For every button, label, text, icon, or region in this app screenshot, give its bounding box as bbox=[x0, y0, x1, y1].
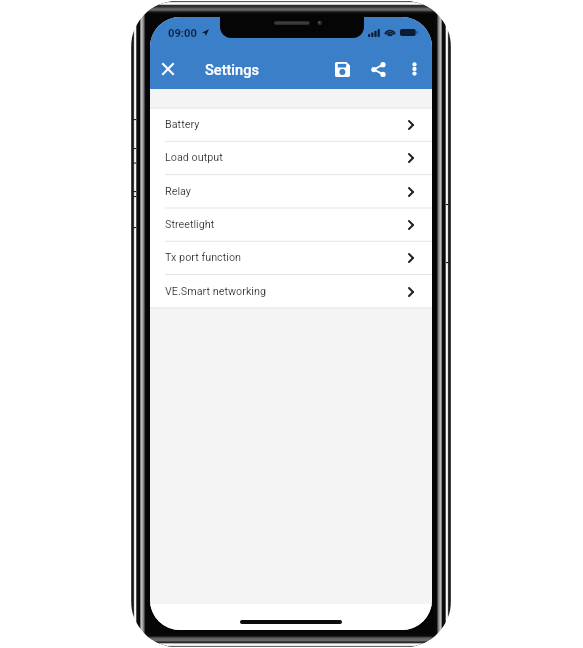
button[interactable]: Streetlight bbox=[150, 208, 432, 241]
button[interactable]: Tx port function bbox=[150, 241, 432, 274]
button[interactable]: Save bbox=[323, 50, 361, 88]
button[interactable]: VE.Smart networking bbox=[150, 275, 432, 308]
staticText: Tx port function bbox=[165, 251, 242, 264]
staticText: Streetlight bbox=[165, 218, 215, 231]
button[interactable]: Battery bbox=[150, 108, 432, 141]
staticText: Relay bbox=[165, 185, 191, 198]
button[interactable]: Share bbox=[359, 50, 397, 88]
staticText: Battery bbox=[165, 118, 200, 131]
button[interactable]: Close bbox=[150, 48, 189, 90]
button[interactable]: Relay bbox=[150, 175, 432, 208]
staticText: 09:00 bbox=[168, 27, 197, 40]
staticText: Settings bbox=[205, 61, 259, 78]
staticText: Load output bbox=[165, 151, 223, 164]
button[interactable]: More options bbox=[395, 50, 432, 88]
button[interactable]: Load output bbox=[150, 141, 432, 174]
staticText: VE.Smart networking bbox=[165, 285, 267, 298]
